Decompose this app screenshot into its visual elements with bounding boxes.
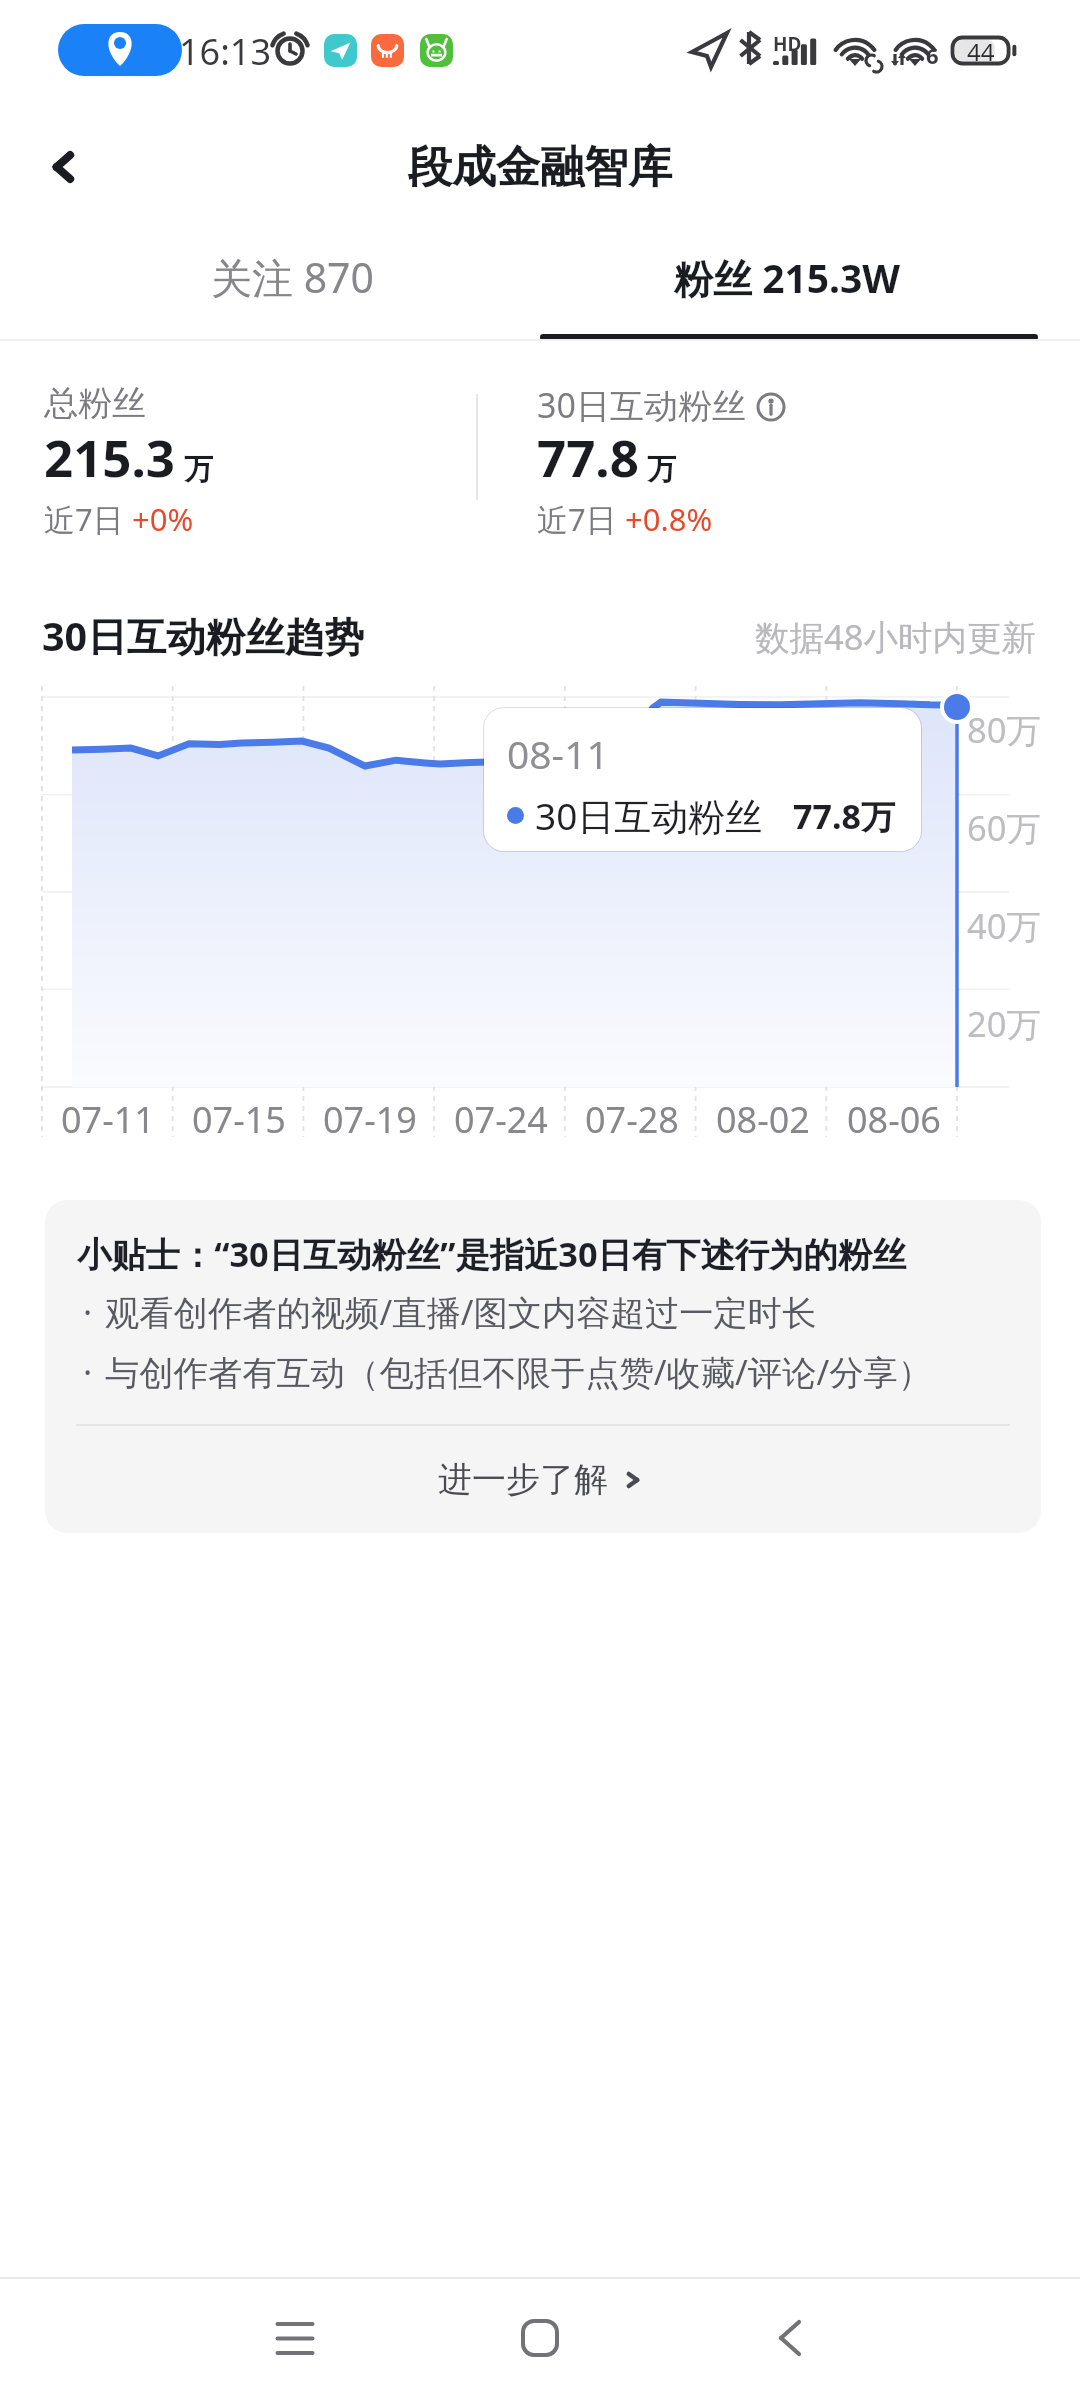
staticText: 07-28 <box>585 1095 679 1144</box>
button[interactable]: 进一步了解 <box>45 1426 1041 1533</box>
button[interactable]: Recent apps <box>235 2277 355 2400</box>
staticText: 30日互动粉丝 <box>537 382 746 428</box>
staticText: 20万 <box>967 1000 1041 1047</box>
staticText: 07-11 <box>61 1095 155 1144</box>
staticText: 6 <box>926 40 939 70</box>
staticText: 80万 <box>967 706 1041 753</box>
staticText: 关注 870 <box>211 249 375 305</box>
button[interactable]: Home <box>480 2277 600 2400</box>
staticText: 万 <box>647 451 676 488</box>
staticText: 近7日 <box>44 498 132 540</box>
staticText: 40万 <box>967 902 1041 949</box>
staticText: 观看创作者的视频/直播/图文内容超过一定时长 <box>105 1288 817 1335</box>
staticText: 08-11 <box>507 727 609 780</box>
staticText: 77.8万 <box>793 793 895 839</box>
button[interactable]: 关注 870 <box>45 224 540 340</box>
staticText: 16:13 <box>179 27 272 76</box>
staticText: 08-02 <box>716 1095 810 1144</box>
staticText: 44 <box>967 35 995 64</box>
staticText: 07-19 <box>323 1095 417 1144</box>
staticText: 07-15 <box>192 1095 286 1144</box>
staticText: 08-06 <box>847 1095 941 1144</box>
staticText: · <box>83 1348 93 1395</box>
staticText: 段成金融智库 <box>408 140 672 195</box>
staticText: 万 <box>184 451 213 488</box>
staticText: +0% <box>132 498 194 540</box>
staticText: 粉丝 215.3W <box>674 251 901 304</box>
staticText: 07-24 <box>454 1095 548 1144</box>
staticText: +0.8% <box>625 498 713 540</box>
staticText: 215.3 <box>44 422 176 491</box>
staticText: 60万 <box>967 804 1041 851</box>
staticText: 30日互动粉丝趋势 <box>42 609 364 663</box>
staticText: 进一步了解 <box>438 1458 608 1501</box>
button[interactable]: Back <box>721 2277 841 2400</box>
staticText: 77.8 <box>537 422 639 491</box>
staticText: · <box>83 1288 93 1335</box>
staticText: 30日互动粉丝 <box>535 790 763 841</box>
button[interactable]: Back <box>26 133 94 201</box>
staticText: 近7日 <box>537 498 625 540</box>
button[interactable]: 粉丝 215.3W <box>540 224 1035 340</box>
staticText: HD <box>773 31 802 57</box>
staticText: 总粉丝 <box>44 382 146 425</box>
staticText: 数据48小时内更新 <box>755 613 1036 660</box>
staticText: 与创作者有互动（包括但不限于点赞/收藏/评论/分享） <box>105 1348 933 1395</box>
staticText: 小贴士：“30日互动粉丝”是指近30日有下述行为的粉丝 <box>77 1230 907 1277</box>
